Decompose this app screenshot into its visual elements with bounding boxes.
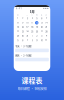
staticText: 四: [36, 14, 38, 16]
staticText: 5: [17, 39, 18, 42]
staticText: 二: [26, 14, 28, 16]
staticText: 11: [31, 21, 33, 24]
staticText: 7: [27, 39, 28, 42]
staticText: 15: [17, 26, 19, 28]
staticText: 22: [17, 30, 19, 33]
staticText: 8: [17, 21, 18, 24]
staticText: 29: [17, 35, 19, 37]
staticText: 6: [22, 39, 23, 42]
staticText: 18: [31, 26, 33, 28]
staticText: 每日课程 · 轻松安排: [17, 86, 46, 91]
staticText: 11: [45, 39, 47, 42]
staticText: 1: [17, 17, 18, 20]
staticText: 14: [45, 21, 47, 24]
staticText: 23: [21, 30, 23, 33]
staticText: 26: [36, 30, 38, 33]
staticText: 课程表: [21, 75, 42, 85]
staticText: 19: [36, 26, 38, 28]
staticText: 9: [22, 21, 23, 24]
staticText: 4: [46, 35, 47, 37]
staticText: 日: [17, 14, 19, 16]
staticText: 25: [31, 30, 33, 33]
staticText: 2: [22, 17, 23, 20]
staticText: 3: [27, 17, 28, 20]
staticText: 24: [26, 30, 28, 33]
staticText: 9:41: [16, 7, 22, 10]
staticText: 今天 · 3 个日程: [15, 45, 31, 48]
staticText: 21: [45, 26, 47, 28]
staticText: 10: [40, 39, 42, 42]
staticText: 六: [45, 14, 47, 16]
staticText: 2: [36, 35, 37, 37]
staticText: 7: [46, 17, 47, 20]
staticText: 30: [21, 35, 23, 37]
staticText: 五: [40, 14, 42, 16]
staticText: 28: [45, 30, 47, 33]
staticText: 9: [36, 39, 37, 42]
staticText: 3月: [29, 9, 34, 14]
staticText: 27: [40, 30, 42, 33]
staticText: 6: [41, 17, 42, 20]
staticText: 13: [40, 21, 42, 24]
staticText: 20: [40, 26, 42, 28]
staticText: 31: [26, 35, 28, 37]
staticText: 5: [36, 17, 37, 20]
staticText: 17: [26, 26, 28, 28]
staticText: 12: [36, 21, 38, 24]
staticText: 16: [21, 26, 23, 28]
staticText: 10: [26, 21, 28, 24]
staticText: 明天 · 2 个日程: [15, 54, 31, 57]
